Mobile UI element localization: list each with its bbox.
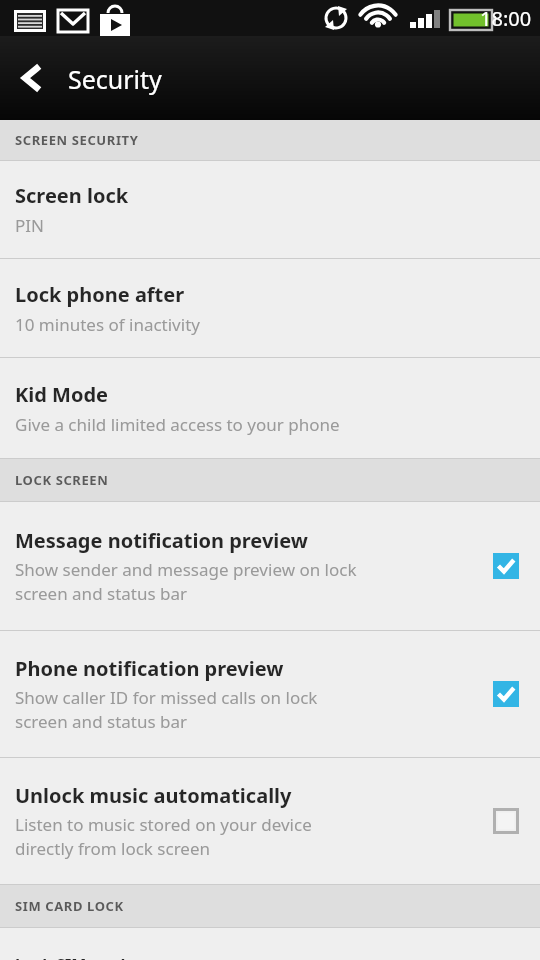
staticText: Unlock music automatically — [15, 782, 292, 809]
staticText: Message notification preview — [15, 527, 308, 554]
staticText: Give a child limited access to your phon… — [15, 413, 340, 436]
staticText: Phone notification preview — [15, 655, 284, 682]
staticText: Kid Mode — [15, 381, 109, 408]
button[interactable]: Message notification preview — [0, 502, 540, 631]
staticText: LOCK SCREEN — [15, 471, 109, 489]
staticText: SCREEN SECURITY — [15, 131, 139, 149]
button[interactable]: Lock SIM card — [0, 928, 540, 960]
staticText: Lock SIM card — [15, 954, 126, 960]
staticText: 18:00 — [480, 5, 532, 32]
button[interactable]: Unlock music automatically — [0, 758, 540, 885]
button[interactable]: Lock phone after — [0, 259, 540, 358]
button[interactable]: Screen lock — [0, 161, 540, 259]
staticText: SIM CARD LOCK — [15, 897, 124, 915]
staticText: PIN — [15, 214, 44, 237]
staticText: Screen lock — [15, 182, 129, 209]
button[interactable]: Back — [0, 36, 62, 120]
staticText: Show sender and message preview on lock … — [15, 558, 357, 605]
button[interactable]: Phone notification preview — [0, 631, 540, 758]
staticText: Lock phone after — [15, 281, 185, 308]
staticText: Show caller ID for missed calls on lock … — [15, 686, 318, 733]
button[interactable]: Kid Mode — [0, 358, 540, 459]
staticText: 10 minutes of inactivity — [15, 313, 200, 336]
staticText: Listen to music stored on your device di… — [15, 813, 312, 860]
staticText: Security — [68, 62, 162, 96]
